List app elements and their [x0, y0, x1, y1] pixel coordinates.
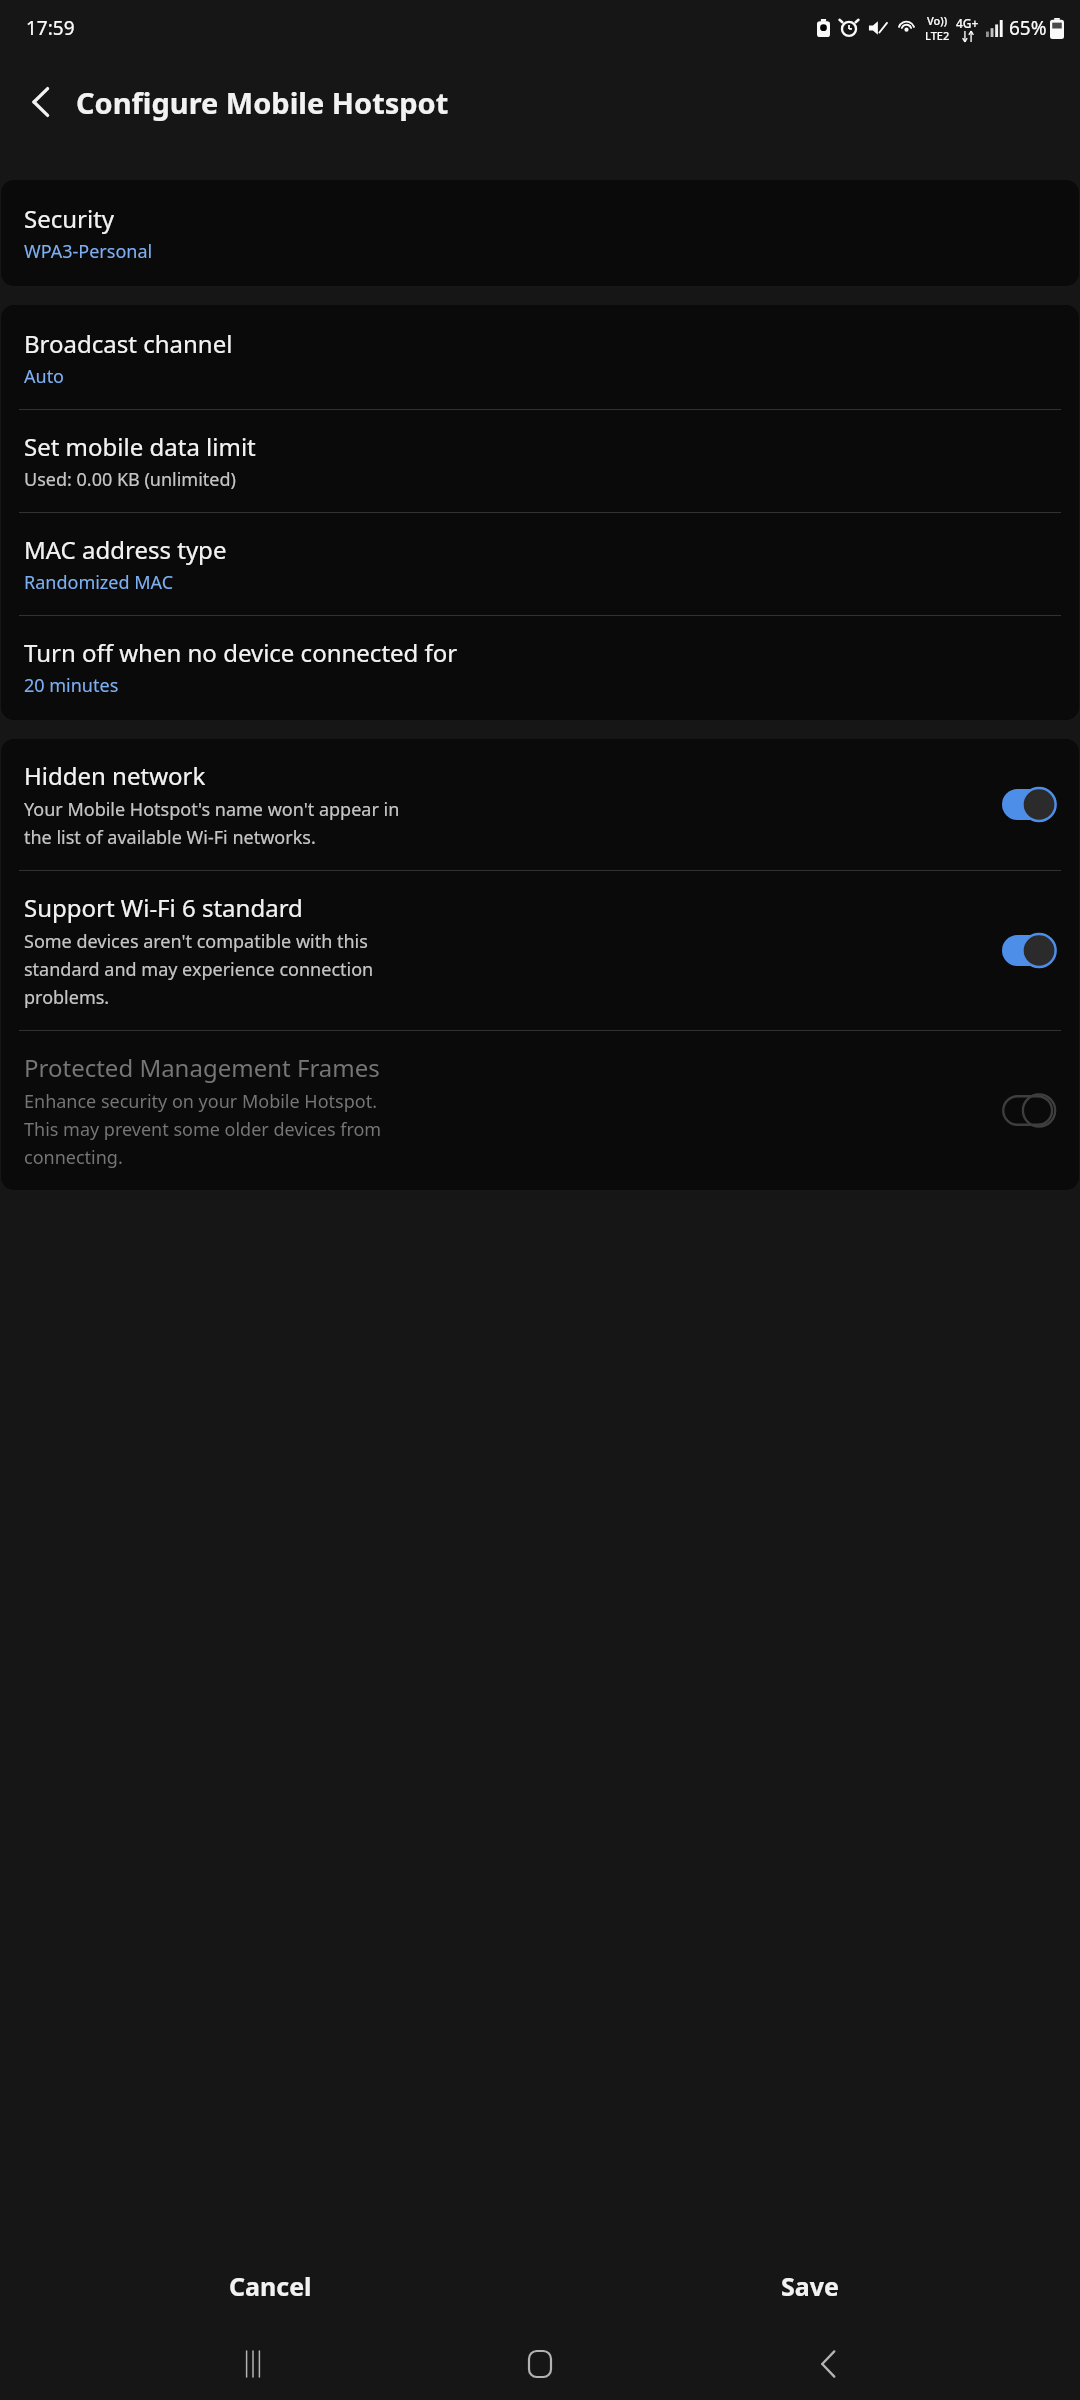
- staticText: Auto: [24, 364, 65, 389]
- staticText: Used: 0.00 KB (unlimited): [24, 467, 236, 492]
- button[interactable]: Support Wi-Fi 6 standard: [1, 871, 1079, 1030]
- staticText: Cancel: [229, 2269, 312, 2303]
- staticText: Save: [781, 2269, 839, 2303]
- staticText: Configure Mobile Hotspot: [76, 83, 449, 122]
- staticText: Vo)): [927, 13, 948, 28]
- staticText: Enhance security on your Mobile Hotspot.: [24, 1089, 377, 1114]
- staticText: This may prevent some older devices from: [24, 1117, 382, 1142]
- staticText: Hidden network: [24, 759, 206, 792]
- staticText: connecting.: [24, 1145, 123, 1170]
- staticText: problems.: [24, 985, 110, 1010]
- staticText: LTE2: [925, 28, 950, 43]
- button[interactable]: Set mobile data limit: [1, 410, 1079, 512]
- staticText: standard and may experience connection: [24, 957, 374, 982]
- button[interactable]: Save: [540, 2243, 1080, 2328]
- staticText: WPA3-Personal: [24, 239, 153, 264]
- staticText: 20 minutes: [24, 673, 119, 698]
- staticText: 17:59: [26, 15, 75, 41]
- staticText: MAC address type: [24, 533, 227, 566]
- staticText: Protected Management Frames: [24, 1051, 380, 1084]
- button[interactable]: Broadcast channel: [1, 305, 1079, 409]
- button[interactable]: On: [1002, 789, 1056, 820]
- button[interactable]: Back: [793, 2329, 863, 2399]
- staticText: the list of available Wi-Fi networks.: [24, 825, 316, 850]
- button[interactable]: Protected Management Frames: [1, 1031, 1079, 1190]
- button[interactable]: Turn off when no device connected for: [1, 616, 1079, 720]
- button[interactable]: Cancel: [0, 2243, 540, 2328]
- button[interactable]: Navigate up: [13, 74, 69, 130]
- staticText: Security: [24, 202, 115, 235]
- button[interactable]: On: [1002, 935, 1056, 966]
- button[interactable]: Home: [505, 2329, 575, 2399]
- staticText: Broadcast channel: [24, 327, 233, 360]
- staticText: 65%: [1009, 15, 1047, 41]
- button[interactable]: MAC address type: [1, 513, 1079, 615]
- button[interactable]: Off: [1002, 1095, 1056, 1126]
- staticText: Support Wi-Fi 6 standard: [24, 891, 303, 924]
- button[interactable]: Recent apps: [218, 2329, 288, 2399]
- staticText: Randomized MAC: [24, 570, 174, 595]
- staticText: Turn off when no device connected for: [24, 636, 458, 669]
- button[interactable]: Hidden network: [1, 739, 1079, 870]
- staticText: Some devices aren't compatible with this: [24, 929, 368, 954]
- staticText: Your Mobile Hotspot's name won't appear …: [24, 797, 400, 822]
- button[interactable]: Security: [1, 180, 1079, 286]
- staticText: Set mobile data limit: [24, 430, 256, 463]
- staticText: 4G+: [956, 15, 979, 31]
